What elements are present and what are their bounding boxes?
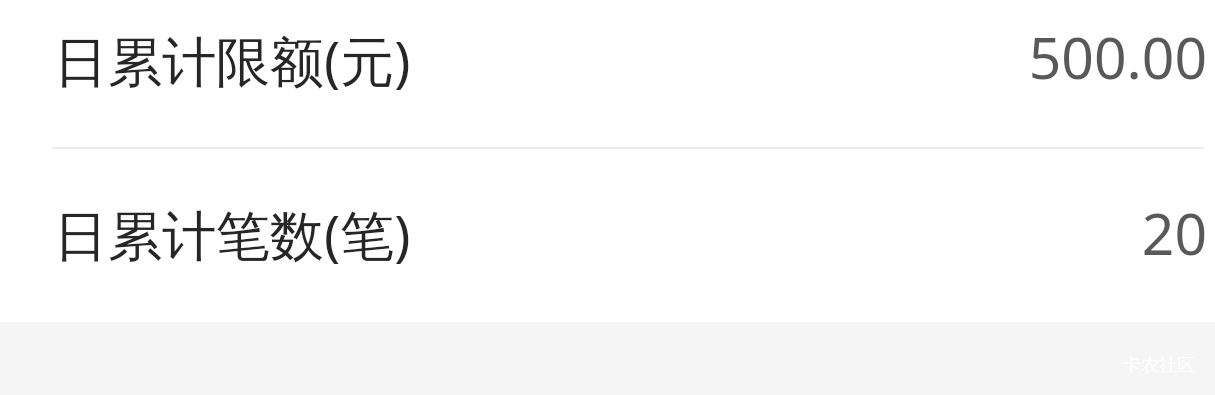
staticText: 500.00	[1028, 18, 1207, 96]
staticText: 日累计限额(元)	[54, 23, 411, 97]
staticText: 20	[1141, 194, 1207, 272]
button[interactable]: 日累计限额(元)	[0, 0, 1215, 149]
button[interactable]: 日累计笔数(笔)	[0, 149, 1215, 322]
staticText: 日累计笔数(笔)	[54, 197, 411, 271]
